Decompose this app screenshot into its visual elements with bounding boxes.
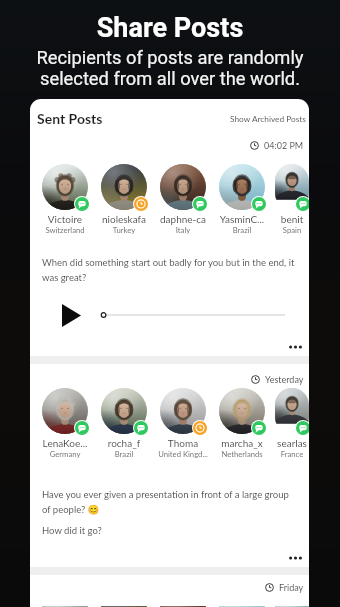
button[interactable]: nioleskafa — [98, 164, 150, 234]
staticText: LenaKoe... — [39, 437, 91, 449]
button[interactable]: LenaKoe... — [39, 388, 91, 458]
staticText: United Kingd... — [157, 449, 209, 458]
staticText: When did something start out badly for y… — [42, 257, 299, 283]
staticText: 04:02 PM — [264, 140, 304, 151]
staticText: How did it go? — [42, 525, 102, 536]
staticText: Yesterday — [265, 374, 304, 385]
staticText: Thoma — [157, 437, 209, 449]
staticText: Italy — [157, 225, 209, 234]
staticText: YasminC... — [216, 213, 268, 225]
staticText: nioleskafa — [98, 213, 150, 225]
staticText: benit — [275, 213, 309, 225]
staticText: Friday — [279, 582, 304, 593]
staticText: Have you ever given a presentation in fr… — [42, 489, 299, 515]
button[interactable]: kosta_v — [98, 606, 150, 607]
staticText: France — [275, 449, 309, 458]
button[interactable]: jonasW — [216, 606, 268, 607]
staticText: Share Posts — [0, 12, 340, 44]
button[interactable]: Amelie — [39, 606, 91, 607]
staticText: Victoire — [39, 213, 91, 225]
button[interactable]: marcha_x — [216, 388, 268, 458]
button[interactable]: sofia_l — [275, 606, 309, 607]
staticText: Sent Posts — [37, 110, 103, 127]
staticText: Brazil — [98, 449, 150, 458]
button[interactable]: Show Archived Posts — [230, 114, 306, 124]
button[interactable]: benit — [275, 164, 309, 234]
staticText: rocha_f — [98, 437, 150, 449]
staticText: Germany — [39, 449, 91, 458]
button[interactable]: YasminC... — [216, 164, 268, 234]
staticText: Recipients of posts are randomly selecte… — [0, 47, 340, 89]
button[interactable]: More options — [283, 340, 307, 354]
button[interactable]: rocha_f — [98, 388, 150, 458]
button[interactable]: More options — [283, 551, 307, 565]
staticText: Spain — [275, 225, 309, 234]
staticText: Brazil — [216, 225, 268, 234]
staticText: Switzerland — [39, 225, 91, 234]
staticText: Turkey — [98, 225, 150, 234]
staticText: searlas — [275, 437, 309, 449]
button[interactable]: searlas — [275, 388, 309, 458]
button[interactable]: Thoma — [157, 388, 209, 458]
button[interactable]: daphne-ca — [157, 164, 209, 234]
staticText: daphne-ca — [157, 213, 209, 225]
button[interactable]: Victoire — [39, 164, 91, 234]
button[interactable]: mirella — [157, 606, 209, 607]
button[interactable]: Play — [62, 303, 84, 327]
staticText: Netherlands — [216, 449, 268, 458]
staticText: Show Archived Posts — [230, 114, 306, 124]
staticText: marcha_x — [216, 437, 268, 449]
